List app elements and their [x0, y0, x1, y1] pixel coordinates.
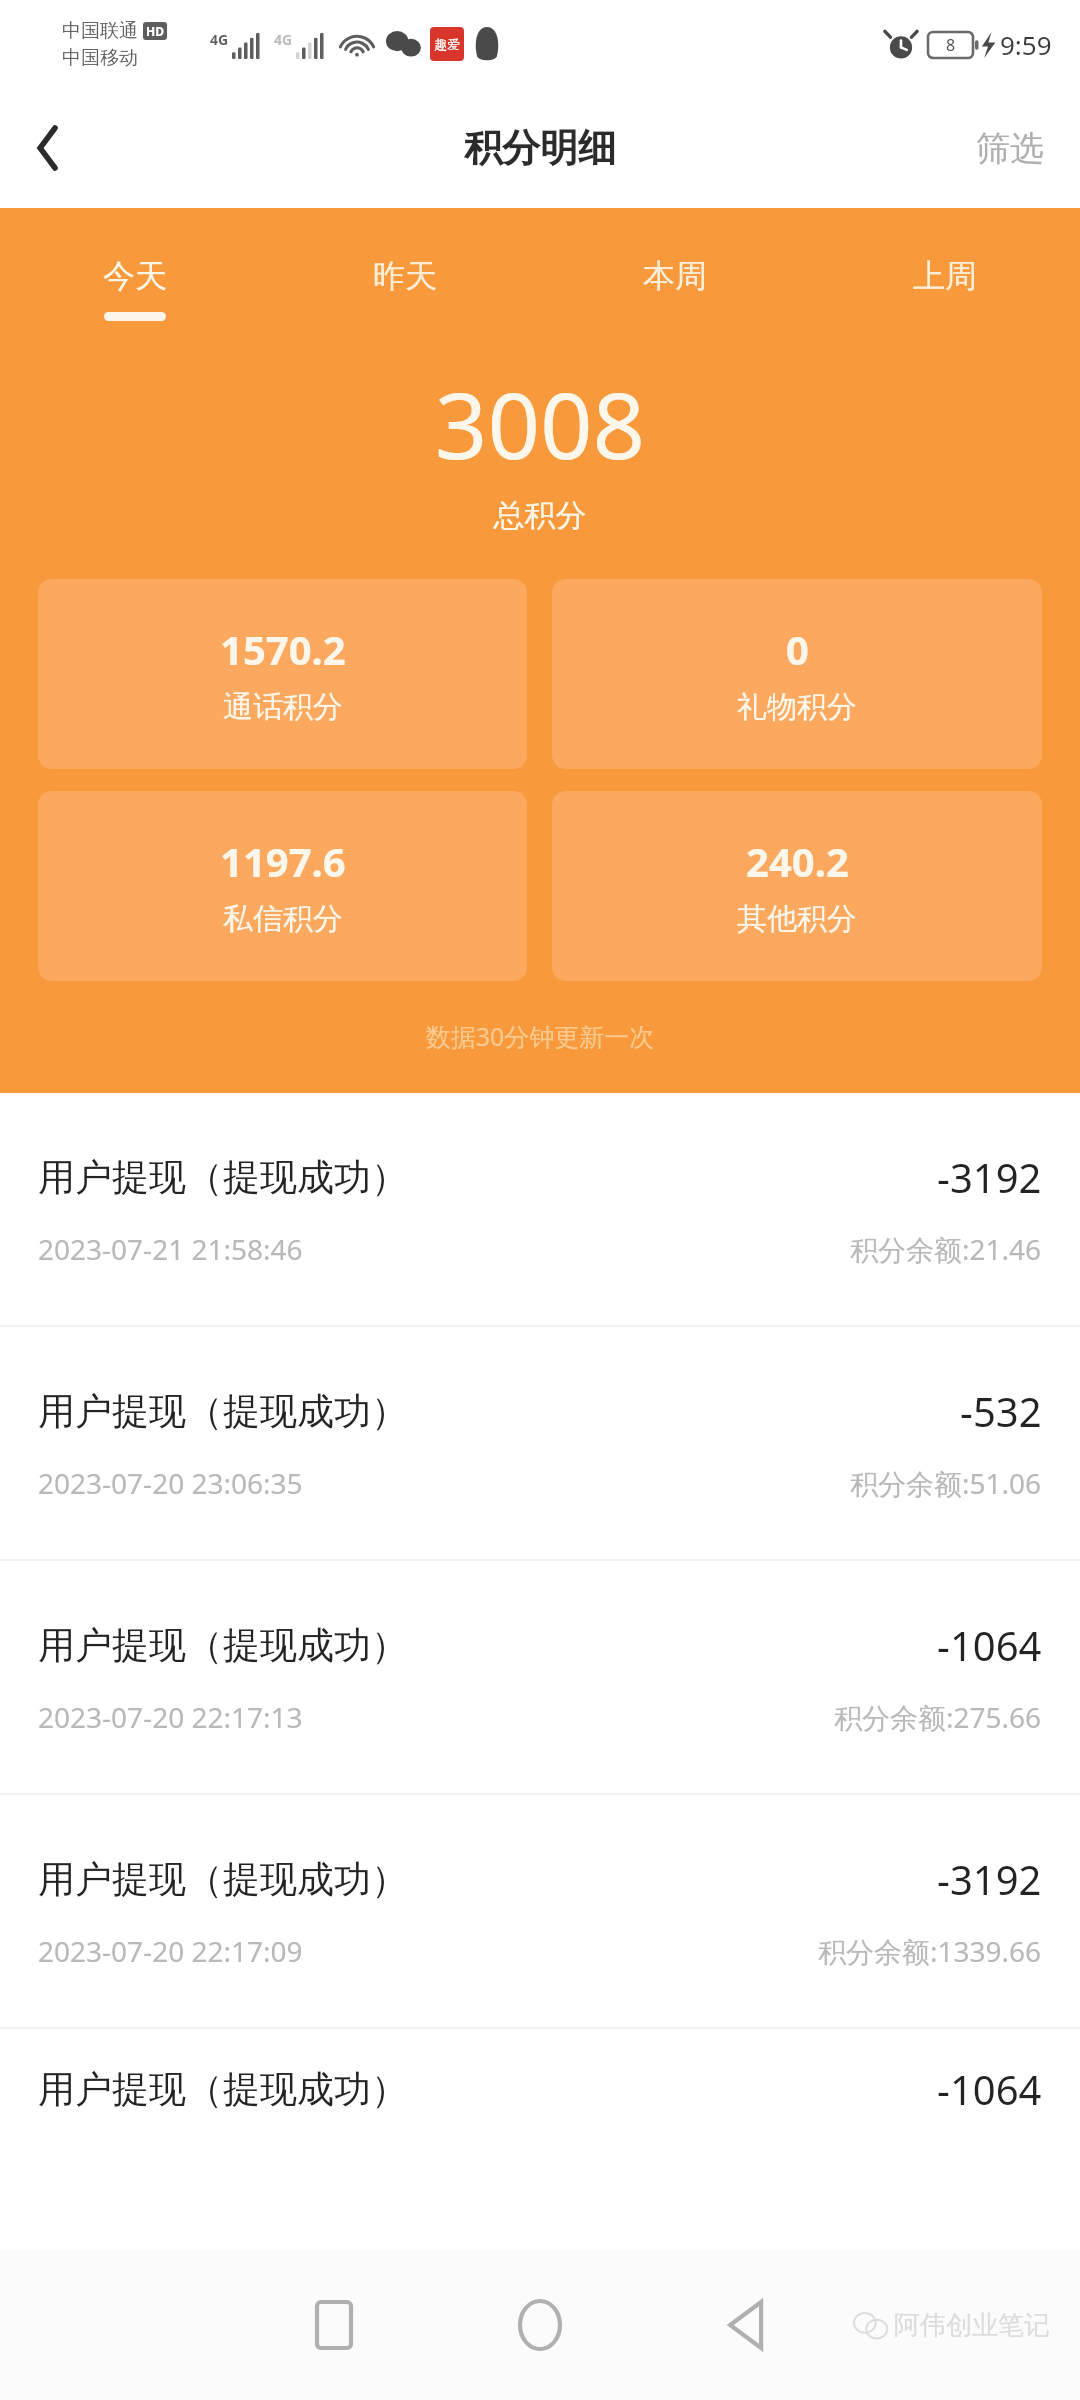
button[interactable]: 今天	[0, 256, 270, 321]
button[interactable]: 240.2	[552, 791, 1042, 981]
button[interactable]: 1197.6	[38, 791, 527, 981]
staticText: -1064	[937, 2062, 1042, 2116]
button[interactable]: Back	[0, 100, 96, 196]
button[interactable]: Back	[691, 2270, 801, 2380]
staticText: 今天	[103, 256, 167, 296]
button[interactable]: Home	[485, 2270, 595, 2380]
button[interactable]: 用户提现（提现成功）	[0, 2029, 1080, 2149]
button[interactable]: 1570.2	[38, 579, 527, 769]
staticText: 用户提现（提现成功）	[38, 1154, 408, 1201]
staticText: 用户提现（提现成功）	[38, 1622, 408, 1669]
staticText: 用户提现（提现成功）	[38, 1388, 408, 1435]
staticText: 通话积分	[223, 688, 343, 726]
staticText: HD	[146, 23, 164, 39]
staticText: 中国联通	[62, 19, 138, 43]
staticText: 昨天	[373, 256, 437, 296]
staticText: -3192	[937, 1852, 1042, 1906]
staticText: 9:59	[1000, 27, 1052, 62]
staticText: 本周	[643, 256, 707, 296]
staticText: 2023-07-21 21:58:46	[38, 1230, 303, 1268]
staticText: 阿伟创业笔记	[894, 2309, 1050, 2342]
staticText: 中国移动	[62, 46, 138, 70]
staticText: -3192	[937, 1150, 1042, 1204]
staticText: 总积分	[0, 496, 1080, 535]
staticText: 私信积分	[223, 900, 343, 938]
staticText: 积分余额:51.06	[850, 1464, 1042, 1502]
staticText: 积分余额:1339.66	[818, 1932, 1042, 1970]
staticText: 2023-07-20 23:06:35	[38, 1464, 303, 1502]
button[interactable]: 用户提现（提现成功）	[0, 1561, 1080, 1793]
button[interactable]: 用户提现（提现成功）	[0, 1795, 1080, 2027]
staticText: 2023-07-20 22:17:13	[38, 1698, 303, 1736]
staticText: 上周	[913, 256, 977, 296]
staticText: -1064	[937, 1618, 1042, 1672]
staticText: 趣爱	[434, 36, 460, 52]
staticText: 数据30分钟更新一次	[0, 1019, 1080, 1053]
staticText: 筛选	[976, 127, 1044, 170]
button[interactable]: 昨天	[270, 256, 540, 321]
button[interactable]: 用户提现（提现成功）	[0, 1093, 1080, 1325]
button[interactable]: 上周	[810, 256, 1080, 321]
button[interactable]: 本周	[540, 256, 810, 321]
staticText: 积分明细	[464, 124, 616, 172]
button[interactable]: 筛选	[940, 105, 1080, 192]
staticText: 8	[946, 34, 956, 56]
button[interactable]: Recents	[279, 2270, 389, 2380]
staticText: 2023-07-20 22:17:09	[38, 1932, 303, 1970]
staticText: 积分余额:275.66	[834, 1698, 1042, 1736]
staticText: 1570.2	[220, 622, 346, 676]
staticText: 4G	[274, 30, 293, 49]
button[interactable]: 用户提现（提现成功）	[0, 1327, 1080, 1559]
staticText: 用户提现（提现成功）	[38, 1856, 408, 1903]
staticText: -532	[960, 1384, 1042, 1438]
staticText: 1197.6	[220, 834, 346, 888]
button[interactable]: 0	[552, 579, 1042, 769]
staticText: 其他积分	[737, 900, 857, 938]
staticText: 240.2	[746, 834, 849, 888]
staticText: 3008	[0, 361, 1080, 486]
staticText: 用户提现（提现成功）	[38, 2066, 408, 2113]
staticText: 积分余额:21.46	[850, 1230, 1042, 1268]
staticText: 4G	[210, 30, 229, 49]
staticText: 礼物积分	[737, 688, 857, 726]
staticText: 0	[786, 622, 809, 676]
